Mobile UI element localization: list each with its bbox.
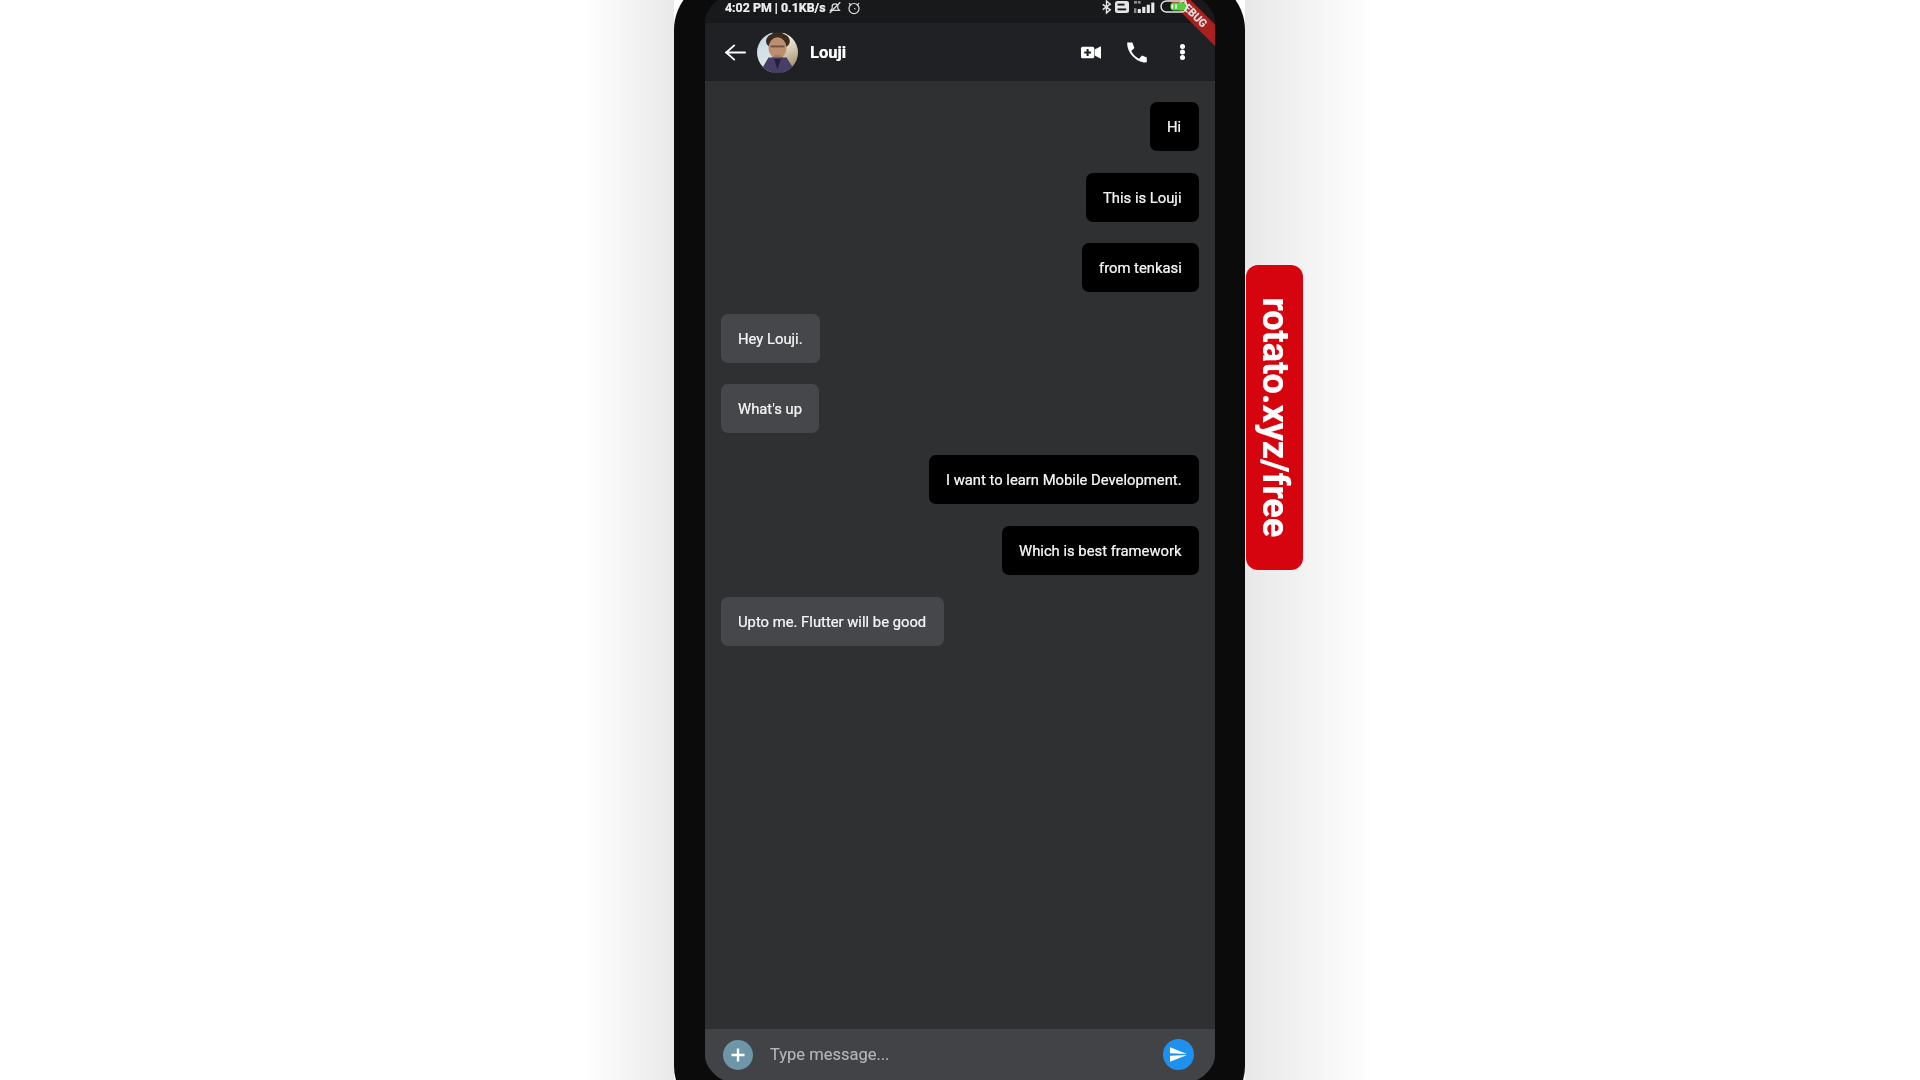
staticText: This is Louji [1103, 189, 1182, 206]
staticText: Hi [1167, 118, 1182, 135]
button[interactable]: Send [1163, 1039, 1194, 1070]
button[interactable]: Call [1117, 33, 1155, 71]
staticText: Louji [810, 43, 847, 62]
staticText: I want to learn Mobile Development. [946, 471, 1182, 488]
staticText: Hey Louji. [738, 330, 803, 347]
staticText: 4:02 PM | 0.1KB/s [725, 0, 826, 14]
button[interactable]: Profile photo [757, 32, 798, 73]
button[interactable]: Back [717, 34, 753, 70]
button[interactable]: Profile photo [757, 23, 847, 81]
button[interactable]: This is Louji [1086, 173, 1199, 222]
button[interactable]: Which is best framework [1002, 526, 1199, 575]
button[interactable]: Video call [1072, 33, 1110, 71]
staticText: Which is best framework [1019, 542, 1182, 559]
button[interactable]: Type message... [753, 1029, 1163, 1080]
button[interactable]: Hi [1150, 102, 1199, 151]
staticText: Upto me. Flutter will be good [738, 613, 927, 630]
button[interactable]: from tenkasi [1082, 243, 1199, 292]
button[interactable]: What's up [721, 384, 819, 433]
staticText: What's up [738, 400, 802, 417]
button[interactable]: More options [1163, 33, 1201, 71]
button[interactable]: I want to learn Mobile Development. [929, 455, 1199, 504]
button[interactable]: rotato.xyz/free [1246, 265, 1303, 570]
button[interactable]: Attach [723, 1040, 753, 1070]
button[interactable]: Hey Louji. [721, 314, 820, 363]
button[interactable]: Upto me. Flutter will be good [721, 597, 944, 646]
staticText: Type message... [770, 1045, 890, 1064]
staticText: from tenkasi [1099, 259, 1182, 276]
